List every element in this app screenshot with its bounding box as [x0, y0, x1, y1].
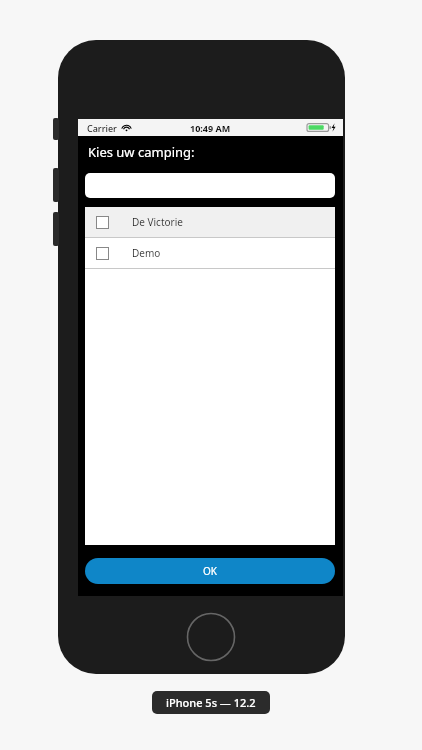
staticText: OK [203, 564, 217, 578]
staticText: Carrier [87, 122, 117, 134]
button[interactable]: De Victorie [85, 207, 335, 237]
staticText: Kies uw camping: [88, 143, 195, 161]
staticText: Demo [132, 246, 161, 260]
staticText: iPhone 5s — 12.2 [166, 695, 256, 710]
button[interactable]: Demo [85, 238, 335, 268]
staticText: De Victorie [132, 215, 183, 229]
button[interactable]: Home [186, 612, 236, 662]
button[interactable] [85, 173, 335, 198]
staticText: 10:49 AM [190, 122, 231, 134]
button[interactable]: OK [85, 558, 335, 584]
